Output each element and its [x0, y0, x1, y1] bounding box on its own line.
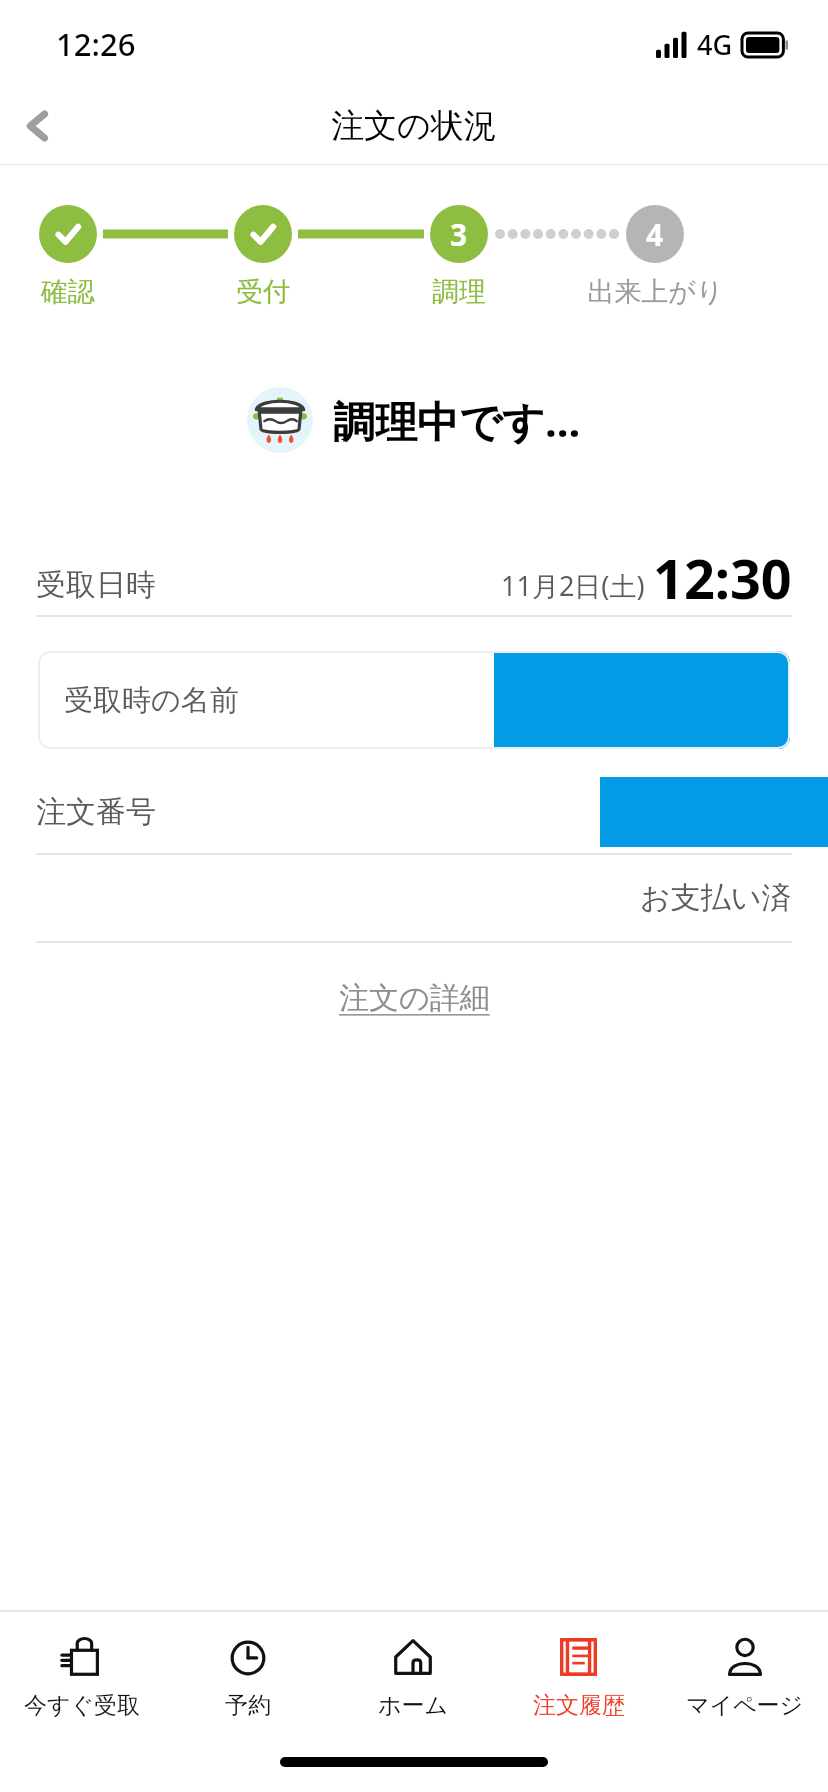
button[interactable]: 受取時の名前 — [38, 651, 790, 749]
staticText: 受付 — [236, 275, 290, 309]
staticText: 受取日時 — [36, 566, 156, 604]
staticText: 今すぐ受取 — [24, 1691, 141, 1720]
staticText: 注文の詳細 — [339, 979, 490, 1017]
button[interactable]: 今すぐ受取 — [0, 1612, 165, 1740]
staticText: 12:26 — [56, 23, 136, 65]
button[interactable]: 戻る — [0, 88, 76, 164]
staticText: お支払い済 — [640, 879, 792, 917]
staticText: 3 — [450, 214, 468, 255]
staticText: 注文番号 — [36, 793, 156, 831]
staticText: 注文履歴 — [533, 1691, 625, 1720]
staticText: マイページ — [686, 1691, 804, 1720]
button[interactable]: ホーム — [330, 1612, 496, 1740]
staticText: 4G — [697, 26, 733, 63]
staticText: 調理 — [432, 275, 486, 309]
staticText: 確認 — [41, 275, 95, 309]
staticText: 11月2日(土) — [501, 567, 645, 604]
staticText: 注文の状況 — [331, 105, 497, 147]
staticText: 12:30 — [653, 541, 792, 615]
staticText: 出来上がり — [587, 275, 724, 309]
staticText: 受取時の名前 — [64, 682, 239, 719]
staticText: 4 — [646, 214, 664, 255]
staticText: ホーム — [378, 1691, 449, 1720]
button[interactable]: マイページ — [662, 1612, 828, 1740]
button[interactable]: 注文履歴 — [496, 1612, 662, 1740]
staticText: 予約 — [225, 1691, 271, 1720]
button[interactable]: 予約 — [165, 1612, 330, 1740]
staticText: 調理中です... — [333, 392, 581, 449]
button[interactable]: 注文の詳細 — [327, 973, 502, 1023]
